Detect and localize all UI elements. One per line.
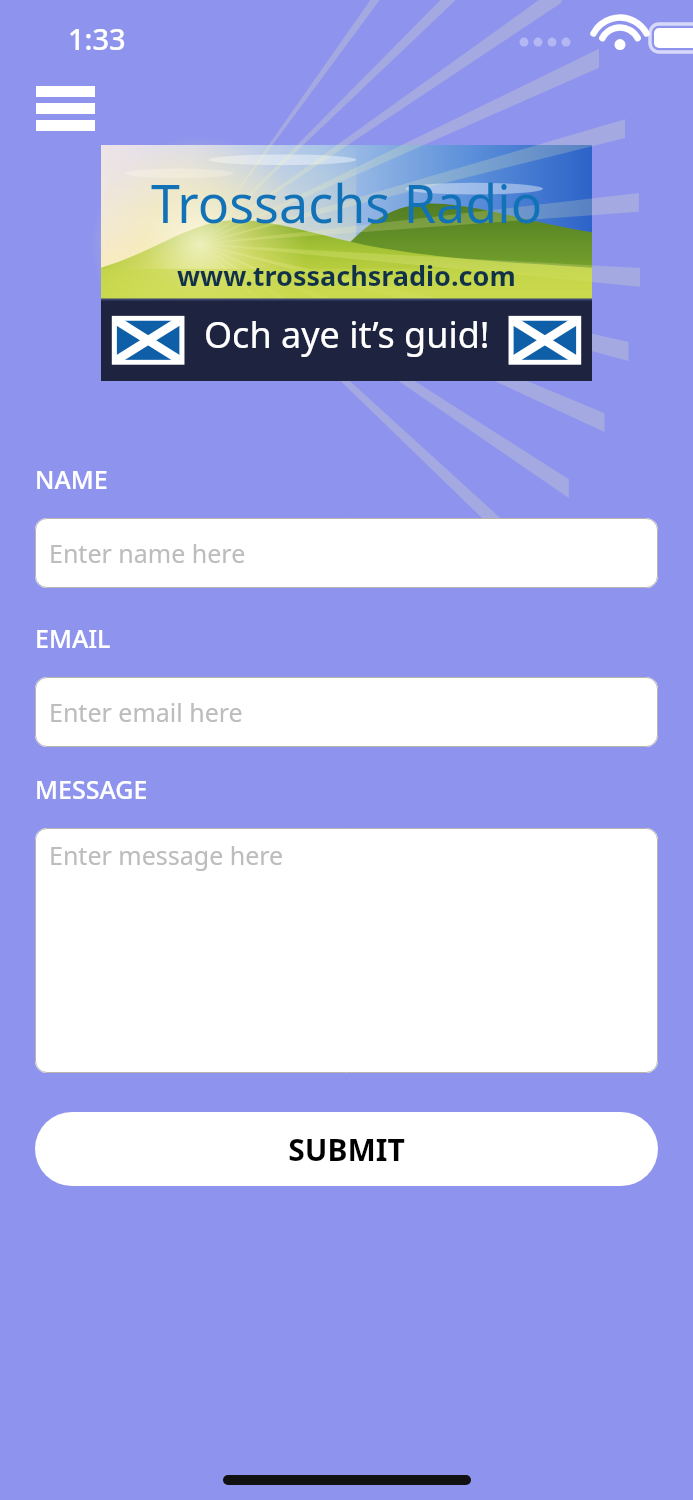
button[interactable]: Open navigation menu bbox=[30, 80, 102, 132]
staticText: Enter email here bbox=[49, 695, 243, 729]
button[interactable]: Enter name here bbox=[35, 518, 658, 588]
staticText: NAME bbox=[35, 462, 108, 496]
button[interactable]: SUBMIT bbox=[35, 1112, 658, 1186]
staticText: MESSAGE bbox=[35, 772, 148, 806]
button[interactable]: Enter message here bbox=[35, 828, 658, 1073]
staticText: EMAIL bbox=[35, 621, 111, 655]
staticText: Och aye it’s guid! bbox=[204, 310, 490, 359]
staticText: www.trossachsradio.com bbox=[177, 257, 516, 294]
staticText: 1:33 bbox=[68, 19, 126, 58]
button[interactable]: Enter email here bbox=[35, 677, 658, 747]
staticText: Enter name here bbox=[49, 536, 246, 570]
staticText: Trossachs Radio bbox=[151, 167, 543, 238]
staticText: Enter message here bbox=[49, 838, 284, 872]
staticText: SUBMIT bbox=[288, 1129, 405, 1170]
